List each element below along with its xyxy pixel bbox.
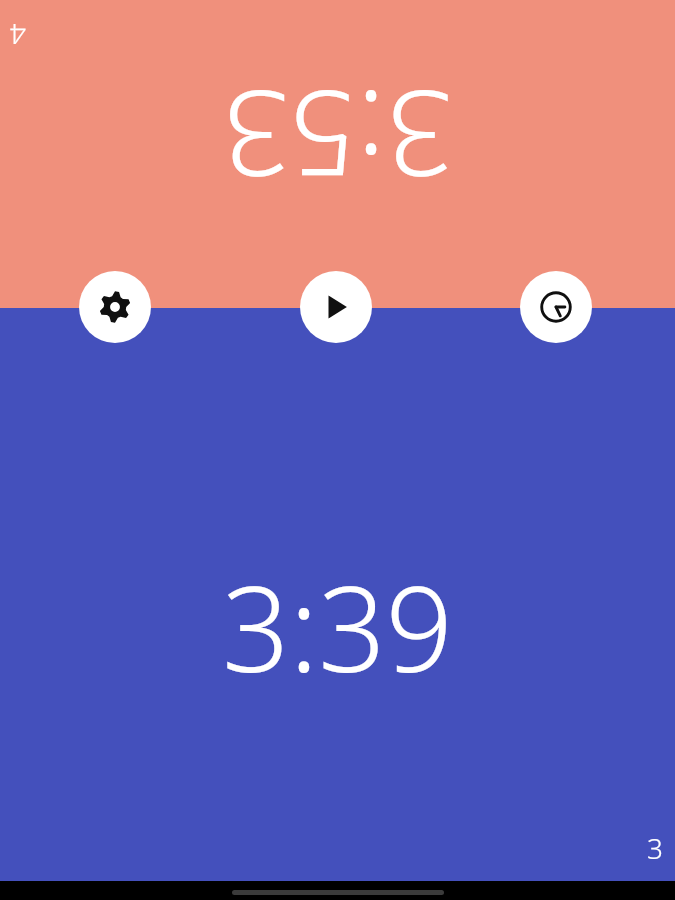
button[interactable]: Settings	[79, 271, 151, 343]
staticText: 4	[10, 16, 26, 54]
button[interactable]: Play	[300, 271, 372, 343]
staticText: 3:39	[222, 546, 453, 707]
staticText: 3:53	[222, 56, 453, 217]
staticText: 3	[647, 829, 663, 867]
button[interactable]: 4	[0, 0, 675, 308]
button[interactable]: Time history	[520, 271, 592, 343]
button[interactable]: 3:39	[0, 308, 675, 881]
